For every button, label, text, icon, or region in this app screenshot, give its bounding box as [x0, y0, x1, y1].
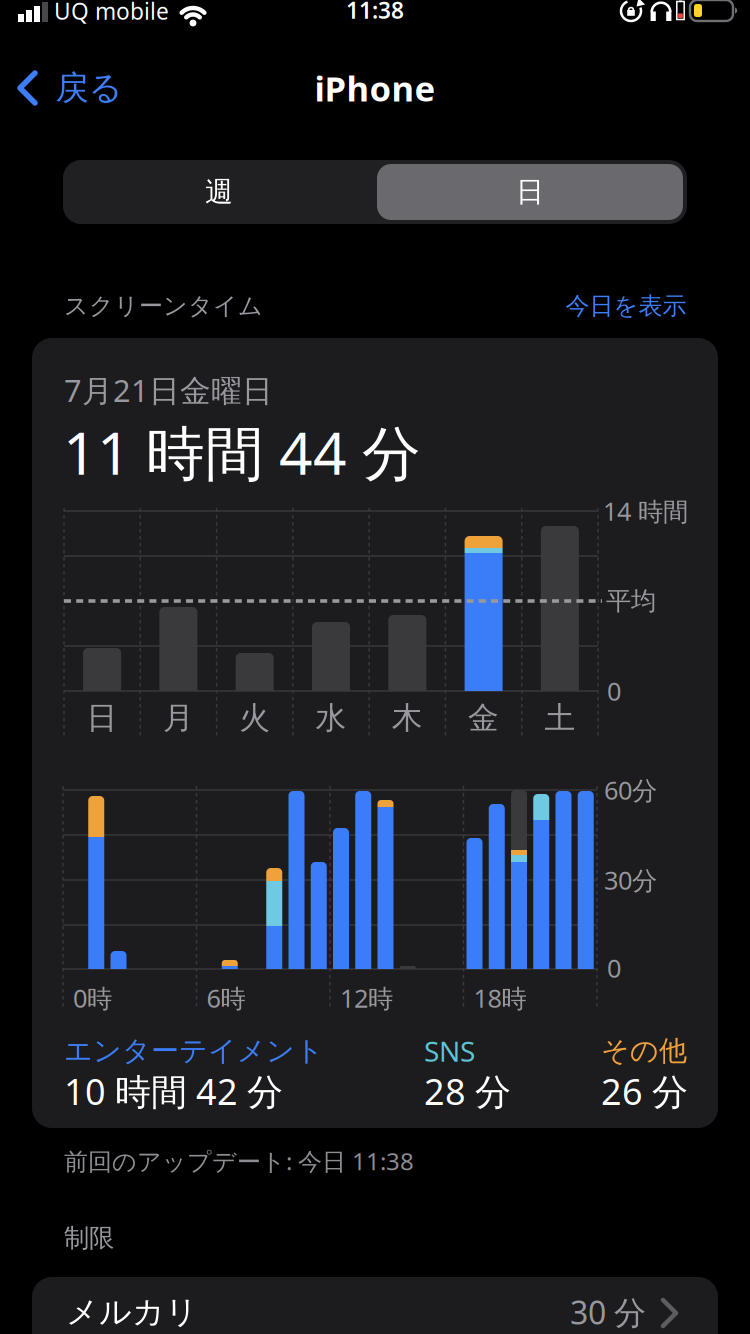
staticText: 0: [607, 951, 621, 985]
staticText: 10 時間 42 分: [64, 1066, 283, 1115]
staticText: 日: [87, 699, 118, 737]
staticText: 18時: [473, 981, 526, 1015]
staticText: 7月21日金曜日: [64, 369, 273, 411]
staticText: 0: [607, 674, 621, 708]
staticText: 60分: [604, 773, 657, 807]
staticText: エンターテイメント: [64, 1033, 324, 1069]
staticText: 30 分: [570, 1290, 646, 1334]
staticText: スクリーンタイム: [64, 291, 263, 321]
staticText: SNS: [424, 1032, 475, 1070]
staticText: iPhone: [314, 64, 435, 112]
staticText: 28 分: [424, 1066, 511, 1115]
staticText: 前回のアップデート: 今日 11:38: [64, 1145, 414, 1177]
staticText: 今日を表示: [565, 291, 686, 321]
button[interactable]: 日: [63, 160, 369, 216]
staticText: UQ mobile: [54, 0, 169, 26]
staticText: 12時: [340, 981, 393, 1015]
staticText: 30分: [604, 863, 657, 897]
button[interactable]: 週: [63, 160, 375, 224]
staticText: 制限: [64, 1222, 114, 1254]
button[interactable]: 今日を表示: [565, 291, 686, 321]
button[interactable]: メルカリ: [32, 1277, 718, 1334]
staticText: 金: [468, 699, 499, 737]
staticText: その他: [601, 1033, 687, 1069]
staticText: 水: [315, 699, 346, 737]
staticText: 週: [205, 174, 233, 210]
staticText: 戻る: [55, 67, 122, 109]
staticText: 火: [239, 699, 270, 737]
staticText: 26 分: [601, 1066, 688, 1115]
staticText: 土: [544, 699, 575, 737]
staticText: メルカリ: [66, 1292, 198, 1332]
staticText: 平均: [606, 585, 656, 617]
button[interactable]: 戻る: [0, 72, 160, 104]
staticText: 14 時間: [603, 494, 688, 528]
staticText: 11:38: [346, 0, 404, 25]
staticText: 11 時間 44 分: [63, 412, 421, 492]
staticText: 木: [392, 699, 423, 737]
staticText: 日: [516, 174, 544, 210]
staticText: 月: [163, 699, 194, 737]
staticText: 0時: [73, 981, 112, 1015]
staticText: 6時: [206, 981, 245, 1015]
